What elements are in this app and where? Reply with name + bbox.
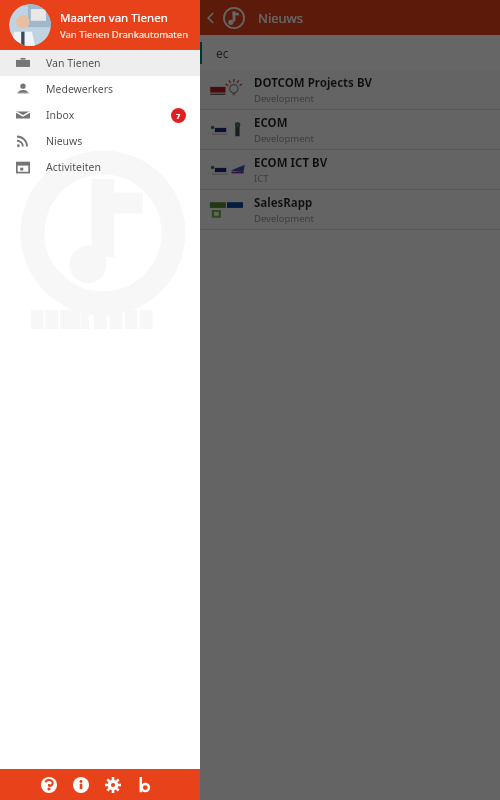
button[interactable]: Maarten van Tienen bbox=[0, 0, 200, 50]
staticText: Maarten van Tienen bbox=[60, 10, 168, 26]
button[interactable]: Activiteiten bbox=[0, 154, 200, 180]
button[interactable]: DOTCOM Projects BV bbox=[200, 70, 500, 110]
staticText: Activiteiten bbox=[46, 160, 101, 174]
staticText: ECOM ICT BV bbox=[254, 155, 328, 171]
button[interactable]: Van Tienen bbox=[0, 50, 200, 76]
button[interactable]: Help bbox=[38, 774, 60, 796]
staticText: ec bbox=[216, 45, 229, 61]
button[interactable]: ec bbox=[200, 35, 500, 70]
staticText: ECOM bbox=[254, 115, 288, 131]
staticText: Van Tienen Drankautomaten bbox=[60, 28, 189, 41]
staticText: Development bbox=[254, 92, 314, 105]
staticText: Inbox bbox=[46, 108, 75, 122]
button[interactable]: Info bbox=[70, 774, 92, 796]
button[interactable]: ECOM bbox=[200, 110, 500, 150]
staticText: Nieuws bbox=[258, 9, 304, 27]
button[interactable]: Medewerkers bbox=[0, 76, 200, 102]
staticText: 7 bbox=[176, 111, 181, 121]
button[interactable]: Settings bbox=[102, 774, 124, 796]
staticText: ICT bbox=[254, 172, 269, 185]
button[interactable]: SalesRapp bbox=[200, 190, 500, 230]
button[interactable]: Brand bbox=[134, 774, 156, 796]
button[interactable]: Inbox bbox=[0, 102, 200, 128]
staticText: Medewerkers bbox=[46, 82, 114, 96]
staticText: DOTCOM Projects BV bbox=[254, 75, 373, 91]
staticText: Development bbox=[254, 132, 314, 145]
staticText: SalesRapp bbox=[254, 195, 313, 211]
button[interactable]: Nieuws bbox=[0, 128, 200, 154]
button[interactable]: Back bbox=[200, 7, 222, 29]
staticText: Development bbox=[254, 212, 314, 225]
staticText: Van Tienen bbox=[46, 56, 101, 70]
button[interactable]: ECOM ICT BV bbox=[200, 150, 500, 190]
staticText: Nieuws bbox=[46, 134, 83, 148]
